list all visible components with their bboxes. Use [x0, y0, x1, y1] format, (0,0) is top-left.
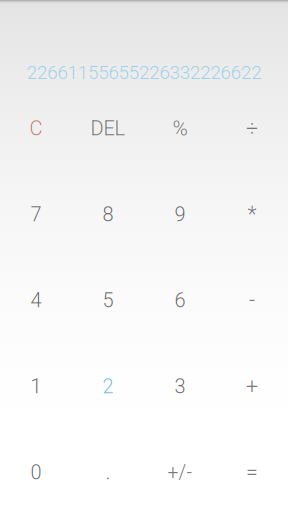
staticText: 2 — [102, 375, 113, 398]
staticText: . — [105, 461, 110, 484]
button[interactable]: 0 — [0, 429, 72, 512]
button[interactable]: 5 — [72, 257, 144, 343]
staticText: 3 — [174, 375, 185, 398]
button[interactable]: + — [216, 343, 288, 429]
staticText: ÷ — [246, 116, 258, 141]
staticText: +/- — [167, 461, 192, 484]
staticText: C — [29, 117, 42, 140]
button[interactable]: - — [216, 257, 288, 343]
button[interactable]: 8 — [72, 171, 144, 257]
button[interactable]: = — [216, 429, 288, 512]
staticText: 1 — [30, 375, 41, 398]
button[interactable]: ÷ — [216, 85, 288, 171]
staticText: - — [249, 288, 255, 313]
staticText: 0 — [30, 461, 41, 484]
button[interactable]: 9 — [144, 171, 216, 257]
button[interactable]: 6 — [144, 257, 216, 343]
staticText: 22661155655226332226622 — [27, 61, 261, 83]
staticText: 9 — [174, 203, 185, 226]
staticText: 7 — [30, 203, 41, 226]
button[interactable]: 3 — [144, 343, 216, 429]
button[interactable]: +/- — [144, 429, 216, 512]
staticText: * — [247, 202, 256, 227]
staticText: % — [172, 116, 187, 141]
button[interactable]: 1 — [0, 343, 72, 429]
button[interactable]: 4 — [0, 257, 72, 343]
staticText: 6 — [174, 289, 185, 312]
button[interactable]: DEL — [72, 85, 144, 171]
staticText: 4 — [30, 289, 41, 312]
button[interactable]: C — [0, 85, 72, 171]
button[interactable]: * — [216, 171, 288, 257]
staticText: 5 — [102, 289, 113, 312]
staticText: = — [246, 460, 258, 485]
button[interactable]: % — [144, 85, 216, 171]
staticText: DEL — [90, 117, 125, 140]
button[interactable]: 7 — [0, 171, 72, 257]
staticText: + — [246, 374, 258, 399]
button[interactable]: 2 — [72, 343, 144, 429]
staticText: 8 — [102, 203, 113, 226]
